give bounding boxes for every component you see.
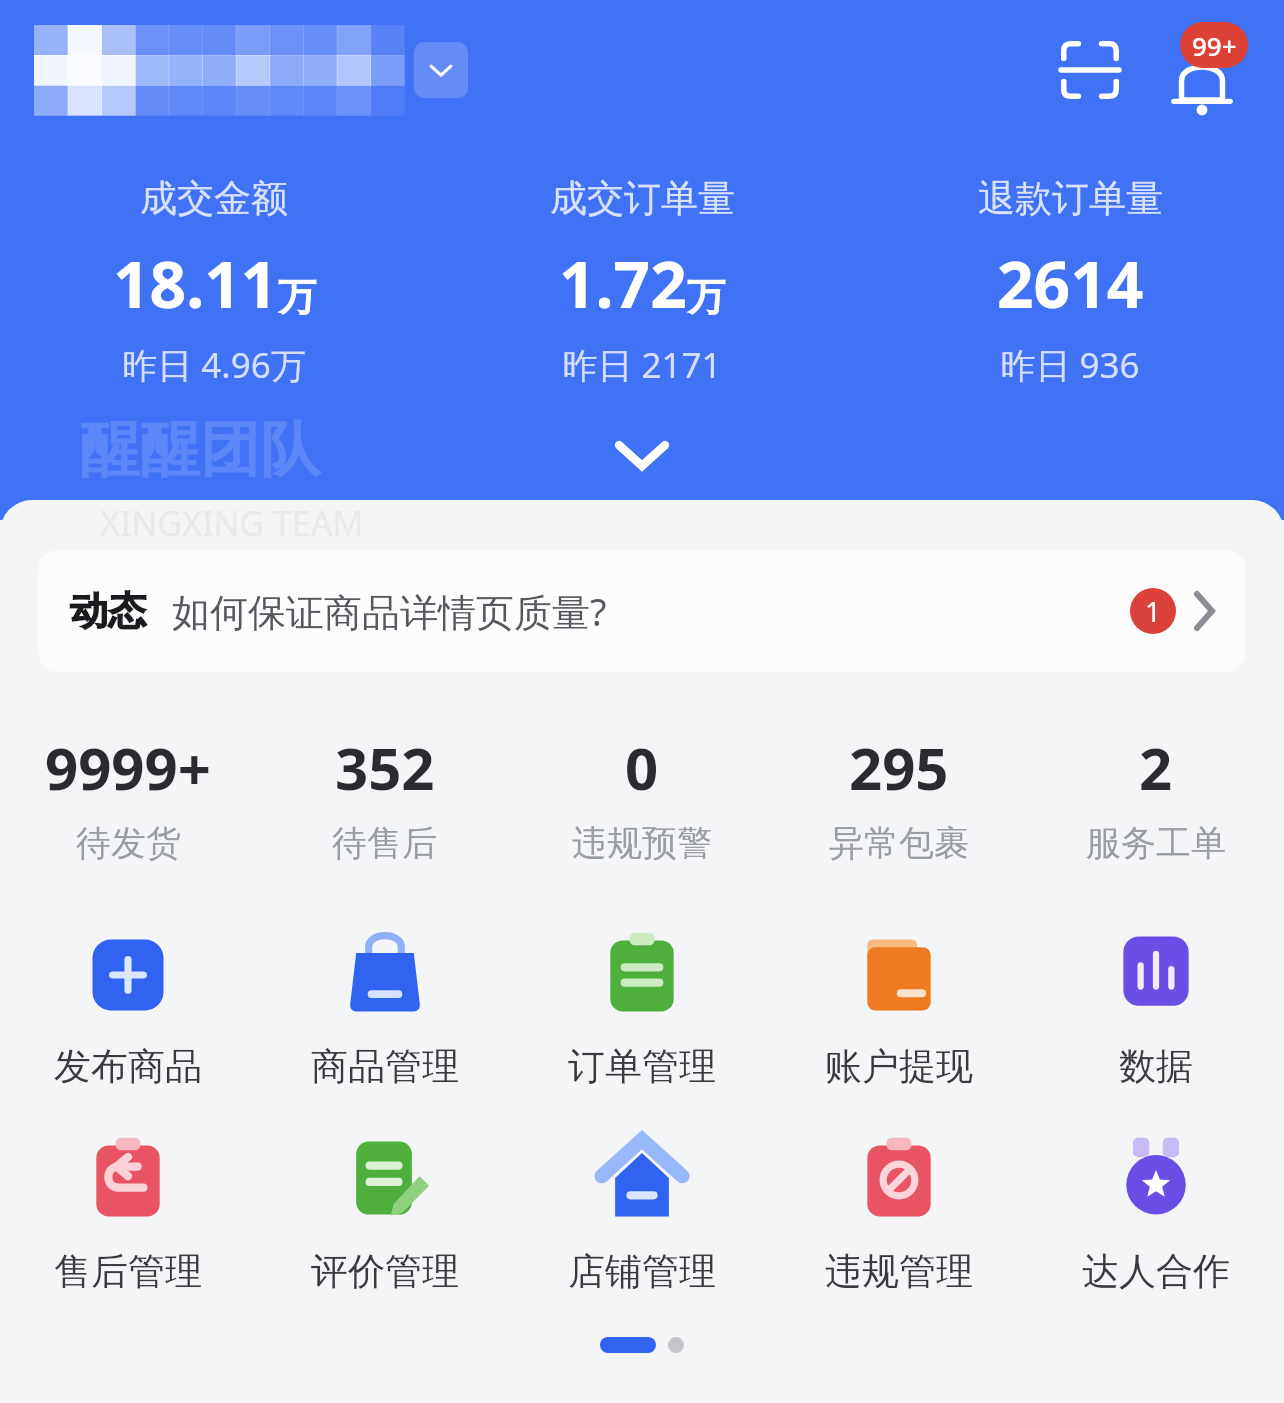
- button[interactable]: 售后管理: [0, 1132, 256, 1295]
- button[interactable]: 违规管理: [770, 1132, 1027, 1295]
- staticText: 2: [1139, 728, 1173, 807]
- button[interactable]: Scan: [1050, 30, 1130, 110]
- button[interactable]: Expand: [597, 425, 687, 485]
- staticText: 发布商品: [54, 1043, 202, 1090]
- staticText: 昨日 2171: [562, 341, 722, 389]
- staticText: 1: [1145, 592, 1162, 630]
- button[interactable]: 发布商品: [0, 927, 256, 1090]
- button[interactable]: 2: [1027, 728, 1284, 865]
- button[interactable]: 9999+: [0, 728, 256, 865]
- button[interactable]: 达人合作: [1027, 1132, 1284, 1295]
- staticText: 99+: [1192, 28, 1237, 63]
- staticText: 账户提现: [825, 1043, 973, 1090]
- staticText: 1.72: [559, 240, 687, 327]
- staticText: 退款订单量: [978, 175, 1163, 222]
- button[interactable]: 商品管理: [256, 927, 513, 1090]
- button[interactable]: 295: [770, 728, 1027, 865]
- staticText: 醒醒团队: [80, 412, 320, 488]
- button[interactable]: 动态: [38, 550, 1246, 672]
- button[interactable]: 店铺管理: [513, 1132, 770, 1295]
- staticText: 352: [335, 728, 435, 807]
- staticText: 售后管理: [54, 1248, 202, 1295]
- staticText: 待发货: [76, 821, 181, 865]
- button[interactable]: Switch shop: [414, 42, 468, 98]
- staticText: 评价管理: [311, 1248, 459, 1295]
- staticText: 违规预警: [572, 821, 712, 865]
- staticText: 9999+: [45, 728, 211, 807]
- staticText: 商品管理: [311, 1043, 459, 1090]
- staticText: 动态: [70, 587, 146, 635]
- staticText: 295: [849, 728, 949, 807]
- button[interactable]: 账户提现: [770, 927, 1027, 1090]
- staticText: 服务工单: [1086, 821, 1226, 865]
- staticText: XINGXING TEAM: [100, 500, 364, 546]
- staticText: 成交金额: [140, 175, 288, 222]
- staticText: 违规管理: [825, 1248, 973, 1295]
- staticText: 昨日 4.96万: [122, 341, 306, 389]
- staticText: 待售后: [332, 821, 437, 865]
- staticText: 2614: [997, 240, 1144, 327]
- staticText: 18.11: [113, 240, 278, 327]
- button[interactable]: 352: [256, 728, 513, 865]
- button[interactable]: [34, 25, 404, 115]
- button[interactable]: 退款订单量: [856, 175, 1284, 389]
- button[interactable]: 订单管理: [513, 927, 770, 1090]
- staticText: 如何保证商品详情页质量?: [172, 585, 607, 637]
- staticText: 数据: [1119, 1043, 1193, 1090]
- staticText: 达人合作: [1082, 1248, 1230, 1295]
- button[interactable]: 数据: [1027, 927, 1284, 1090]
- button[interactable]: 0: [513, 728, 770, 865]
- staticText: 昨日 936: [1000, 341, 1140, 389]
- button[interactable]: 评价管理: [256, 1132, 513, 1295]
- staticText: 万: [278, 273, 316, 321]
- button[interactable]: Notifications: [1154, 22, 1250, 118]
- button[interactable]: 成交金额: [0, 175, 428, 389]
- staticText: 万: [687, 273, 725, 321]
- staticText: 订单管理: [568, 1043, 716, 1090]
- button[interactable]: 成交订单量: [428, 175, 856, 389]
- staticText: 店铺管理: [568, 1248, 716, 1295]
- staticText: 0: [625, 728, 659, 807]
- staticText: 成交订单量: [550, 175, 735, 222]
- staticText: 异常包裹: [829, 821, 969, 865]
